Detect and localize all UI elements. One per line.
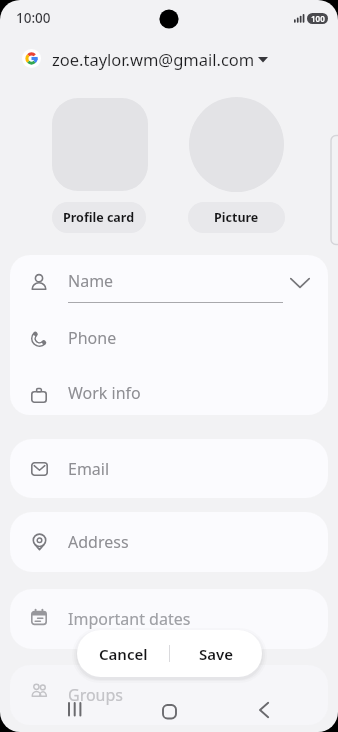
button[interactable] (189, 97, 284, 192)
button[interactable] (245, 694, 285, 726)
staticText: Email (68, 458, 110, 480)
staticText: zoe.taylor.wm@gmail.com (52, 48, 255, 70)
staticText: Phone (68, 327, 117, 349)
staticText: Work info (68, 382, 141, 404)
button[interactable]: Groups (10, 665, 328, 725)
staticText: Save (199, 644, 234, 664)
staticText: Name (68, 270, 114, 292)
button[interactable]: Work info (10, 366, 328, 415)
button[interactable]: Important dates (10, 589, 328, 649)
button[interactable]: Address (10, 512, 328, 572)
button[interactable]: zoe.taylor.wm@gmail.com (12, 44, 282, 74)
button[interactable]: Cancel (77, 630, 169, 677)
staticText: Picture (214, 209, 259, 226)
button[interactable]: Email (10, 439, 328, 498)
button[interactable]: Profile card (52, 202, 146, 233)
staticText: 10:00 (16, 9, 51, 27)
staticText: Cancel (99, 644, 148, 664)
staticText: Profile card (63, 209, 135, 226)
button[interactable] (55, 694, 95, 726)
staticText: Address (68, 531, 129, 553)
button[interactable] (149, 694, 189, 726)
staticText: Groups (68, 684, 124, 706)
button[interactable]: Picture (188, 202, 285, 233)
staticText: Important dates (68, 608, 191, 630)
button[interactable]: Phone (10, 312, 328, 364)
button[interactable]: Name (10, 255, 328, 310)
button[interactable]: Save (170, 630, 262, 677)
staticText: 100 (311, 13, 325, 24)
button[interactable] (52, 98, 148, 191)
